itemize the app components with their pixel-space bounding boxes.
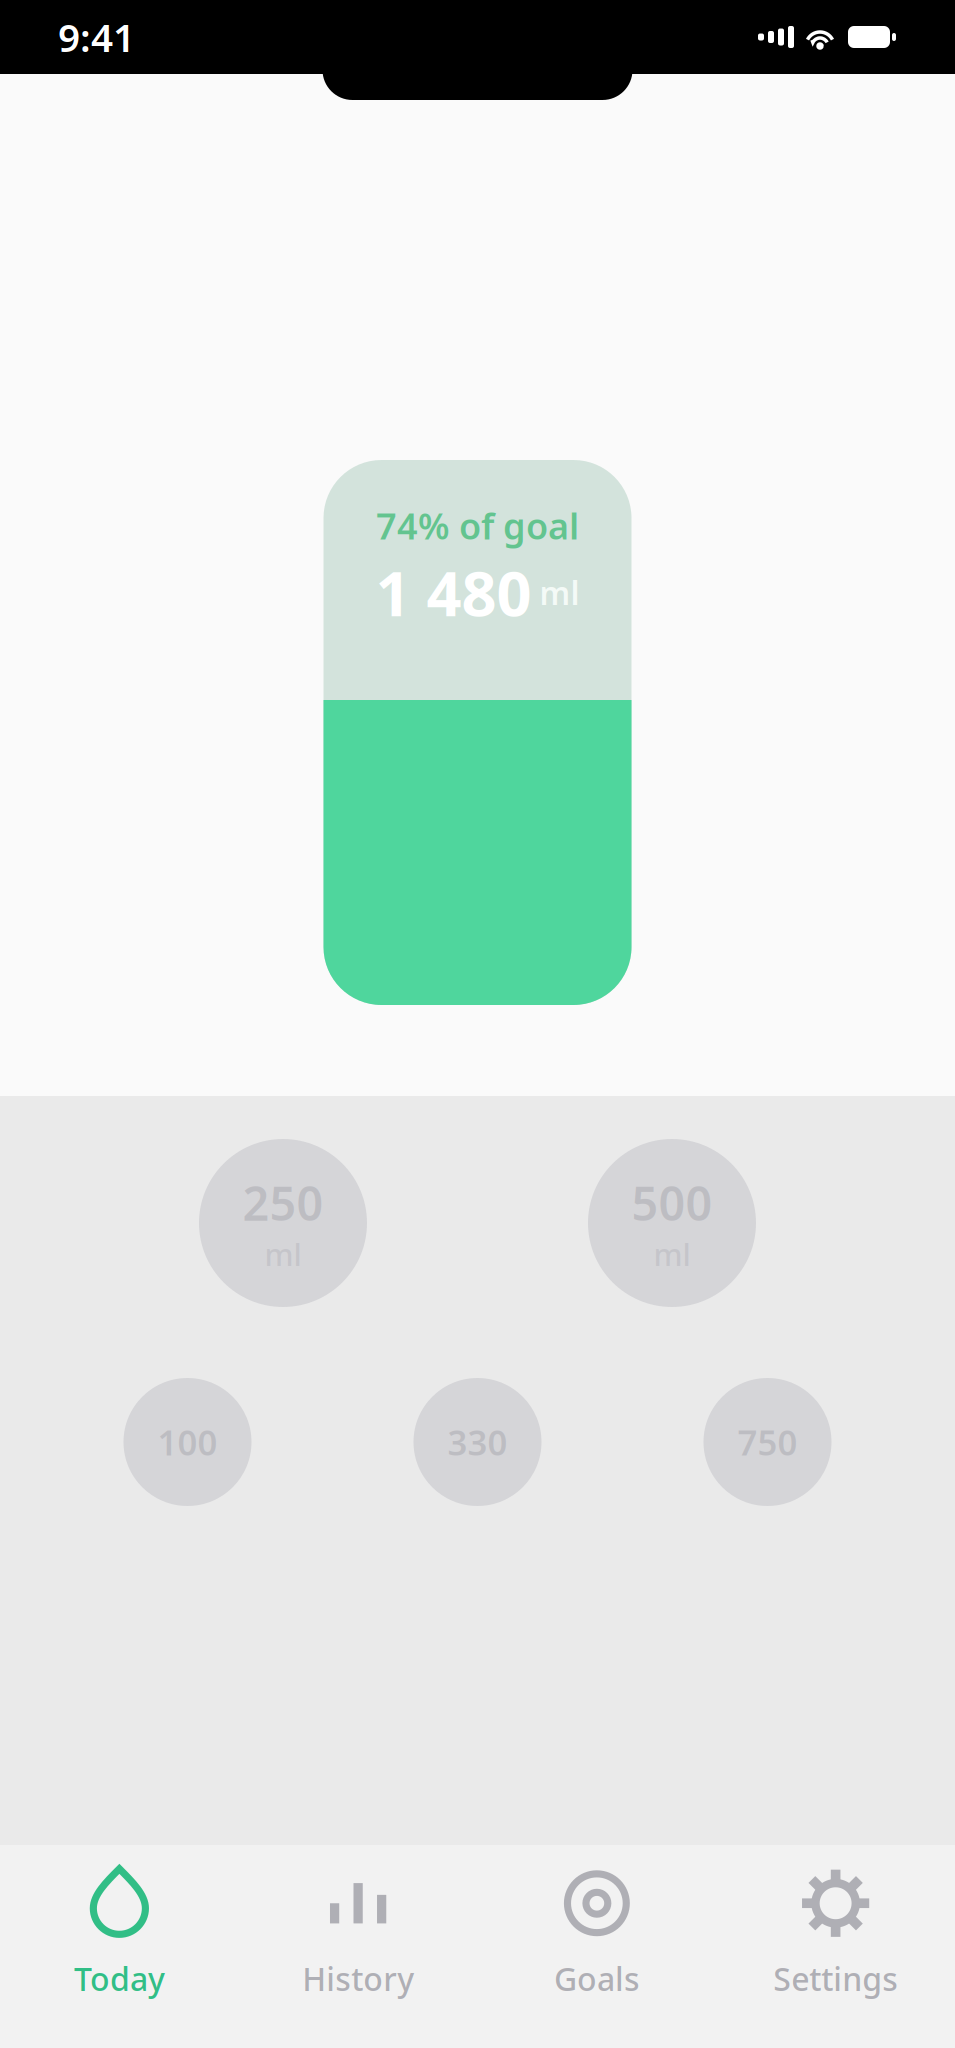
staticText: ml	[539, 571, 579, 614]
button[interactable]: 250	[199, 1139, 367, 1307]
staticText: ml	[653, 1234, 690, 1274]
button[interactable]: 330	[413, 1378, 541, 1506]
button[interactable]: 750	[703, 1378, 831, 1506]
staticText: 9:41	[58, 11, 135, 63]
staticText: 750	[737, 1419, 797, 1465]
staticText: History	[302, 1957, 414, 2000]
staticText: 250	[242, 1172, 323, 1234]
button[interactable]: History	[239, 1843, 478, 2048]
button[interactable]: Today	[0, 1843, 239, 2048]
button[interactable]: Settings	[716, 1843, 955, 2048]
button[interactable]: 100	[123, 1378, 251, 1506]
button[interactable]: Goals	[477, 1843, 716, 2048]
staticText: 500	[631, 1172, 712, 1234]
staticText: 1 480	[375, 552, 531, 633]
staticText: ml	[264, 1234, 301, 1274]
staticText: 330	[447, 1419, 507, 1465]
staticText: 100	[157, 1419, 217, 1465]
staticText: Settings	[773, 1957, 898, 2000]
staticText: 74% of goal	[376, 502, 579, 549]
staticText: Goals	[554, 1957, 640, 2000]
staticText: Today	[74, 1957, 165, 2000]
button[interactable]: 500	[588, 1139, 756, 1307]
